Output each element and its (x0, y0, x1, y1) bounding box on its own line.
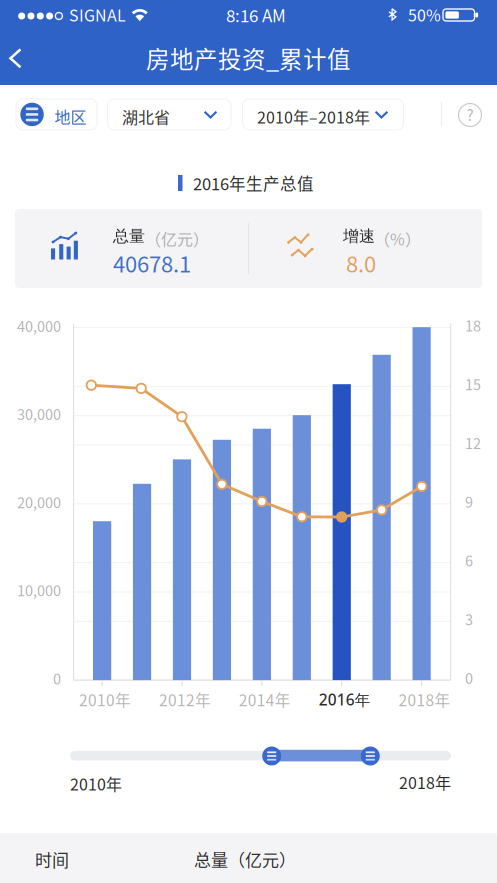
button[interactable]: 地区 (16, 99, 97, 130)
staticText: SIGNAL (69, 3, 126, 26)
staticText: 湖北省 (122, 105, 170, 128)
staticText: 50% (408, 3, 441, 26)
staticText: 2016年生产总值 (193, 171, 314, 195)
staticText: 2016年 (319, 689, 371, 710)
staticText: 8:16 AM (226, 2, 286, 27)
staticText: 增速 (343, 226, 375, 246)
button[interactable]: Range handle (262, 746, 281, 765)
staticText: 3 (465, 608, 473, 629)
staticText: 总量 (113, 226, 145, 246)
button[interactable]: 2010年–2018年 (242, 99, 403, 130)
button[interactable]: Range handle (361, 746, 380, 765)
staticText: 2014年 (239, 688, 291, 711)
staticText: 时间 (35, 847, 69, 872)
staticText: 18 (465, 315, 481, 336)
staticText: 10,000 (17, 579, 61, 600)
staticText: 9 (465, 491, 473, 512)
staticText: 2018年 (399, 770, 451, 794)
button[interactable]: Help (452, 97, 488, 133)
staticText: 2010年–2018年 (257, 105, 370, 128)
staticText: 15 (465, 373, 481, 394)
staticText: 总量（亿元） (194, 847, 296, 872)
staticText: 12 (465, 432, 481, 453)
staticText: 2010年 (79, 688, 131, 711)
staticText: 2012年 (159, 688, 211, 711)
staticText: 8.0 (346, 247, 376, 279)
staticText: （亿元） (145, 227, 209, 250)
staticText: ? (466, 104, 473, 125)
button[interactable]: Back (3, 40, 51, 80)
staticText: 2018年 (399, 688, 451, 711)
button[interactable]: 湖北省 (107, 99, 231, 130)
staticText: 6 (465, 550, 473, 571)
staticText: 0 (53, 668, 61, 689)
staticText: （%） (374, 227, 421, 250)
staticText: 40678.1 (113, 247, 191, 279)
staticText: 20,000 (17, 491, 61, 512)
staticText: 30,000 (17, 403, 61, 424)
staticText: 房地产投资_累计值 (146, 41, 351, 75)
staticText: 40,000 (17, 315, 61, 336)
staticText: 地区 (54, 105, 86, 128)
staticText: 2010年 (70, 772, 122, 795)
staticText: 0 (465, 667, 473, 688)
